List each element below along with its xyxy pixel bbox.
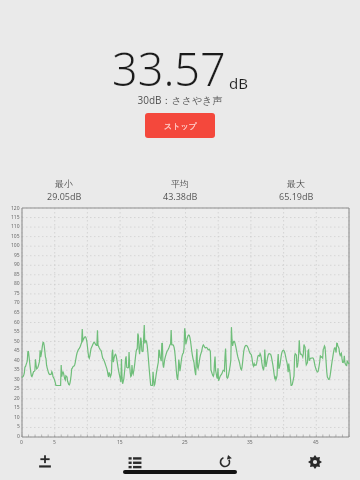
staticText: 100 (11, 242, 20, 249)
staticText: 15 (117, 439, 123, 446)
staticText: 最小 (55, 178, 73, 189)
staticText: ストップ (164, 121, 197, 131)
staticText: 35 (247, 439, 253, 446)
button[interactable]: ストップ (145, 113, 215, 138)
staticText: 35 (14, 366, 20, 373)
staticText: 60 (14, 319, 20, 326)
staticText: 95 (14, 252, 20, 259)
staticText: 45 (14, 347, 20, 354)
staticText: 25 (182, 439, 188, 446)
staticText: 5 (53, 439, 56, 446)
staticText: 平均 (171, 178, 189, 189)
staticText: 43.38dB (163, 190, 198, 202)
staticText: 30dB：ささやき声 (0, 93, 360, 107)
staticText: 75 (14, 290, 20, 297)
staticText: 29.05dB (47, 190, 82, 202)
staticText: 5 (17, 423, 20, 430)
staticText: 40 (14, 357, 20, 364)
staticText: 80 (14, 280, 20, 287)
staticText: 120 (11, 205, 20, 212)
staticText: 110 (11, 223, 20, 230)
staticText: 0 (20, 439, 23, 446)
staticText: 50 (14, 338, 20, 345)
staticText: 10 (14, 414, 20, 421)
staticText: 最大 (287, 178, 305, 189)
staticText: 25 (14, 385, 20, 392)
staticText: 115 (11, 214, 20, 221)
staticText: 33.57 (112, 38, 226, 99)
staticText: 70 (14, 299, 20, 306)
staticText: 105 (11, 233, 20, 240)
button[interactable]: Noise list (90, 448, 180, 476)
staticText: 65.19dB (279, 190, 314, 202)
staticText: 30 (14, 376, 20, 383)
button[interactable]: Calibration (0, 448, 90, 476)
staticText: dB (229, 73, 248, 93)
staticText: 65 (14, 309, 20, 316)
staticText: 20 (14, 395, 20, 402)
staticText: 0 (17, 433, 20, 440)
staticText: 45 (313, 439, 319, 446)
staticText: 85 (14, 271, 20, 278)
button[interactable]: Settings (270, 448, 360, 476)
staticText: 90 (14, 261, 20, 268)
staticText: 55 (14, 328, 20, 335)
staticText: 15 (14, 404, 20, 411)
button[interactable]: Reset (180, 448, 270, 476)
